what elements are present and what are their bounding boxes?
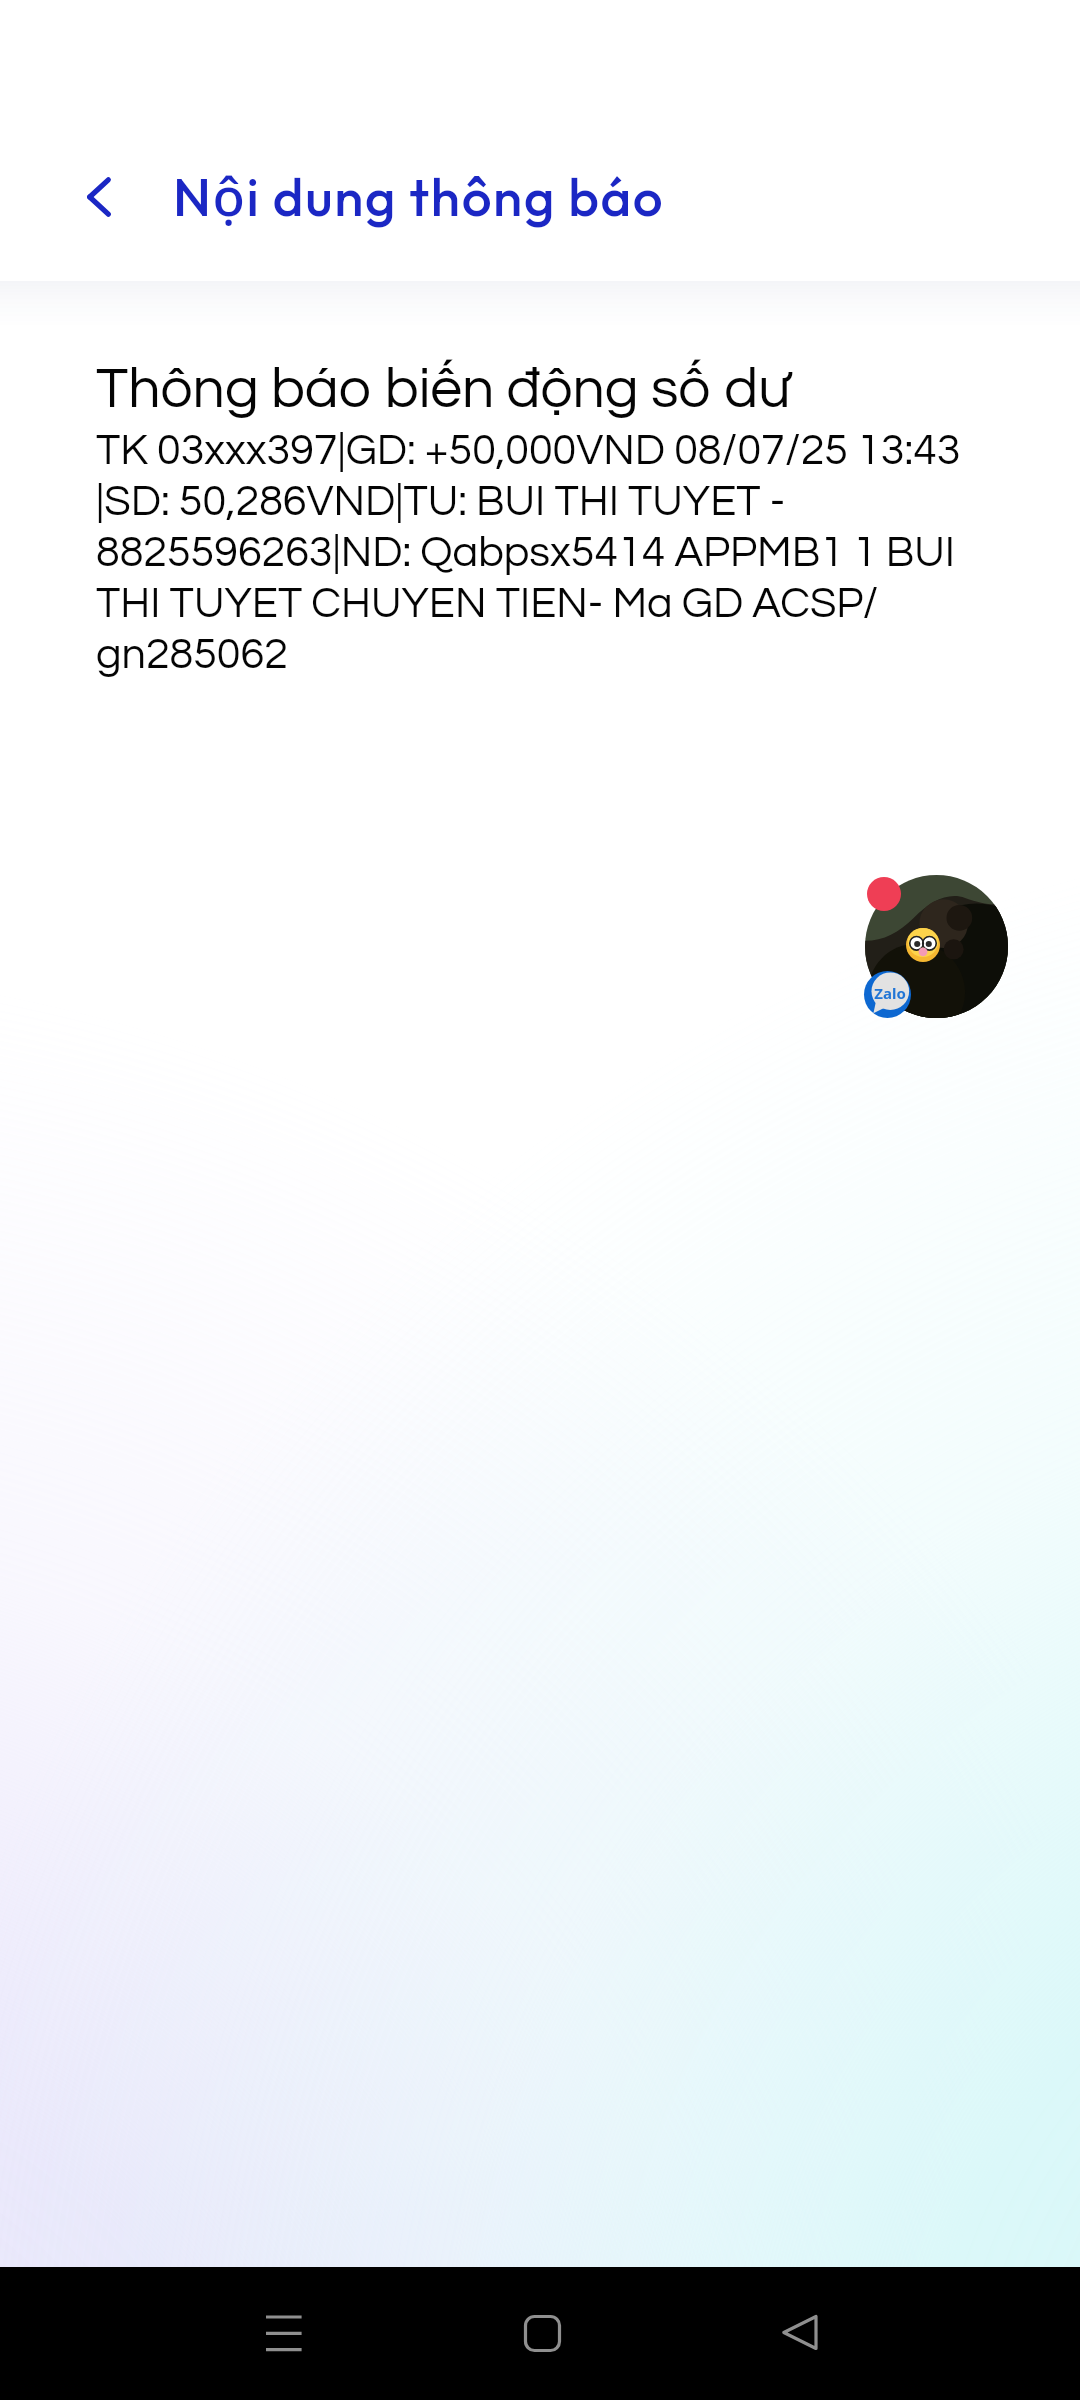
staticText: THI TUYET CHUYEN TIEN- Ma GD ACSP/ [96, 582, 879, 633]
button[interactable]: Recent apps [226, 2267, 342, 2400]
staticText: Nội dung thông báo [173, 159, 665, 231]
staticText: 8825596263|ND: Qabpsx5414 APPMB1 1 BUI [96, 531, 955, 582]
button[interactable]: Home [484, 2267, 600, 2400]
staticText: Zalo [874, 983, 906, 1003]
staticText: gn285062 [96, 633, 288, 684]
staticText: Thông báo biến động số dư [96, 360, 791, 419]
staticText: |SD: 50,286VND|TU: BUI THI TUYET - [96, 480, 786, 531]
staticText: TK 03xxx397|GD: +50,000VND 08/07/25 13:4… [96, 429, 961, 480]
button[interactable]: Zalo chat bubble [845, 855, 1008, 1018]
button[interactable]: Back [742, 2267, 858, 2400]
button[interactable]: Back [53, 151, 145, 243]
